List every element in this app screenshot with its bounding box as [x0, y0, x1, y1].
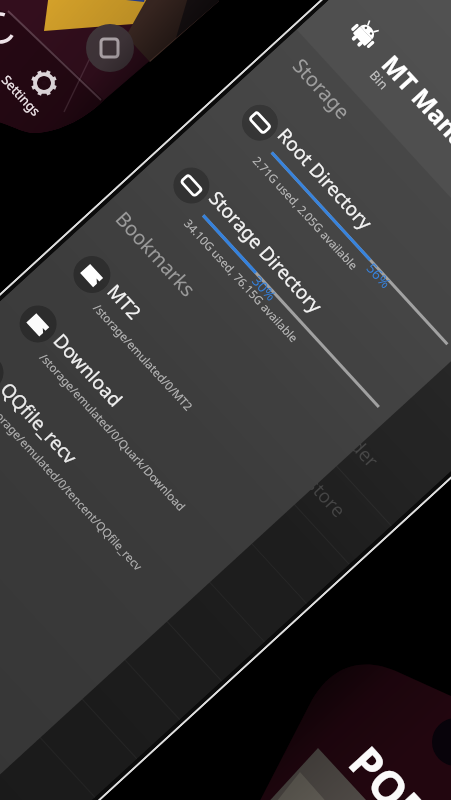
staticText: Storage Directory — [203, 185, 329, 319]
button[interactable]: com.miui.cloudservice — [0, 402, 180, 758]
staticText: QQfile_recv — [0, 377, 83, 470]
staticText: com.miui.core — [48, 280, 153, 391]
staticText: /storage/emulated/0/tencent/QQfile_recv — [0, 398, 146, 574]
button[interactable]: com.android.contacts.provider — [0, 364, 222, 720]
staticText: /storage/emulated/0/Quark/Download — [36, 350, 189, 515]
staticText: 2.71G used, 2.05G available — [249, 153, 361, 274]
staticText: Settings — [0, 71, 45, 120]
button[interactable]: QQfile_recv — [0, 329, 205, 636]
staticText: Download — [48, 328, 128, 413]
staticText: POR — [337, 733, 442, 800]
staticText: com.google.android.gms.backuprestore — [90, 241, 351, 523]
button[interactable]: MT2 — [22, 231, 312, 538]
staticText: Storage — [287, 52, 356, 125]
staticText: com.xiaomi.account — [6, 319, 146, 469]
staticText: Bin — [366, 66, 393, 93]
staticText: Root Directory — [272, 123, 378, 235]
button[interactable]: com.xiaomi.account — [0, 286, 307, 642]
button[interactable]: com.miui.analytics.iService — [0, 325, 265, 681]
button[interactable]: Storage Directory — [109, 139, 413, 459]
button[interactable]: Root Directory — [177, 76, 451, 396]
staticText: Bookmarks — [110, 205, 202, 302]
staticText: com.miui.cloudservice — [0, 435, 32, 600]
staticText: 34.10G used, 76.15G available — [180, 216, 302, 346]
button[interactable]: App icon — [346, 15, 384, 53]
button[interactable]: com.google.android.gms.backuprestore — [58, 208, 392, 565]
staticText: com.xiaomi.mi.CommandLineTool — [0, 474, 60, 715]
staticText: MT Manager — [375, 47, 451, 186]
button[interactable]: com.miui.core — [16, 247, 350, 603]
staticText: 30% — [248, 271, 281, 305]
staticText: com.android.contacts.provider — [0, 397, 125, 616]
staticText: /storage/emulated/0/MT2 — [90, 300, 196, 414]
button[interactable]: com.xiaomi.mi.CommandLineTool — [0, 441, 137, 798]
staticText: MT2 — [102, 279, 147, 325]
staticText: 56% — [362, 259, 395, 292]
button[interactable]: com.android.providers.media.provider — [101, 169, 434, 525]
button[interactable]: Download — [0, 281, 258, 587]
staticText: com.miui.analytics.iService — [0, 358, 144, 551]
staticText: com.android.providers.media.provider — [133, 202, 385, 473]
